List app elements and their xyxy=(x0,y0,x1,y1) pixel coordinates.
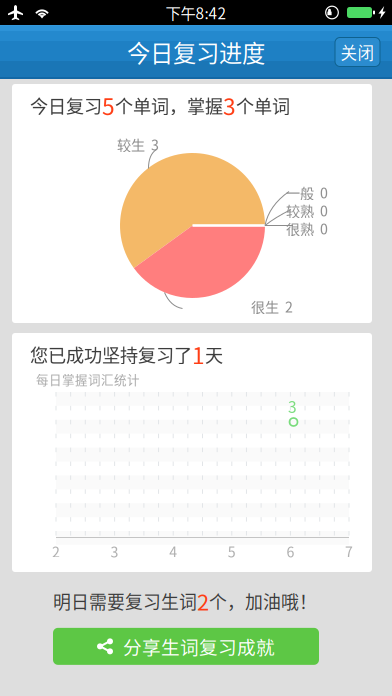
staticText: 个，加油哦！ xyxy=(209,588,317,614)
staticText: 6 xyxy=(286,541,294,561)
staticText: 下午8:42 xyxy=(165,1,226,24)
staticText: 关闭 xyxy=(340,40,374,64)
staticText: 5 xyxy=(102,89,115,122)
staticText: 3 xyxy=(111,541,119,561)
staticText: 分享生词复习成就 xyxy=(123,633,275,660)
staticText: 个单词，掌握 xyxy=(115,92,223,119)
staticText: 个单词 xyxy=(236,92,290,119)
staticText: 明日需要复习生词 xyxy=(53,588,197,614)
staticText: 您已成功坚持复习了 xyxy=(30,341,192,368)
staticText: 每日掌握词汇统计 xyxy=(36,370,140,388)
staticText: 2 xyxy=(197,585,209,617)
staticText: 较熟 0 xyxy=(286,200,328,220)
button[interactable]: 关闭 xyxy=(335,37,380,66)
staticText: 一般 0 xyxy=(286,182,328,202)
staticText: 2 xyxy=(52,541,60,561)
staticText: 今日复习进度 xyxy=(127,35,265,69)
staticText: 3 xyxy=(288,395,297,417)
staticText: 很生 2 xyxy=(251,296,293,316)
staticText: 5 xyxy=(228,541,236,561)
staticText: 较生 3 xyxy=(117,134,159,154)
staticText: 天 xyxy=(205,341,223,368)
staticText: 4 xyxy=(169,541,177,561)
staticText: 1 xyxy=(192,338,205,371)
staticText: 3 xyxy=(223,89,236,122)
staticText: 很熟 0 xyxy=(286,218,328,238)
button[interactable]: 分享生词复习成就 xyxy=(53,628,319,665)
staticText: 今日复习 xyxy=(30,92,102,119)
staticText: 7 xyxy=(345,541,353,561)
